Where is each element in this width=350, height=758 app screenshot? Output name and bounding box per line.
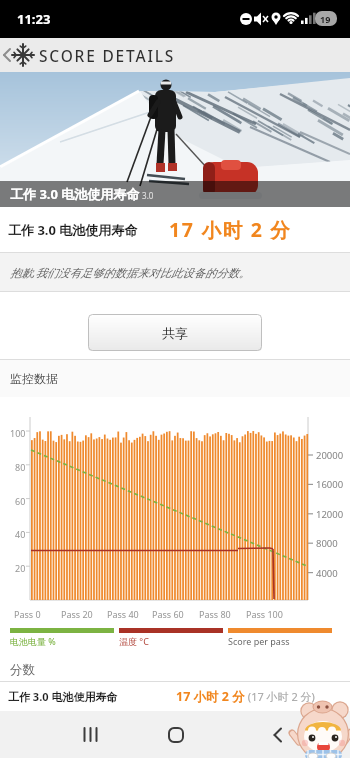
staticText: 温度 °C xyxy=(119,635,149,647)
staticText: 分数 xyxy=(10,662,35,678)
staticText: (17 小时 2 分) xyxy=(245,689,315,704)
staticText: 80 xyxy=(15,461,26,473)
staticText: 8000 xyxy=(316,537,338,550)
staticText: Pass 80 xyxy=(199,608,231,620)
staticText: 100 xyxy=(10,427,26,439)
staticText: 工作 3.0 电池使用寿命 xyxy=(8,221,138,239)
staticText: 40 xyxy=(15,528,26,540)
staticText: 工作 3.0 电池使用寿命 xyxy=(10,185,140,203)
button[interactable] xyxy=(66,711,114,758)
staticText: 20000 xyxy=(316,449,344,462)
staticText: SCORE DETAILS xyxy=(39,45,176,66)
button[interactable] xyxy=(254,711,302,758)
button[interactable] xyxy=(152,711,200,758)
staticText: 3.0 xyxy=(140,190,154,201)
button[interactable]: SCORE DETAILS xyxy=(0,38,350,72)
staticText: 16000 xyxy=(316,478,344,491)
staticText: 20 xyxy=(15,562,26,574)
staticText: 共享 xyxy=(162,325,188,341)
staticText: 4000 xyxy=(316,567,338,580)
staticText: 12000 xyxy=(316,508,344,521)
staticText: Pass 60 xyxy=(152,608,184,620)
staticText: 监控数据 xyxy=(10,371,58,386)
staticText: 19 xyxy=(320,13,331,25)
staticText: 抱歉,我们没有足够的数据来对比此设备的分数。 xyxy=(10,265,251,280)
button[interactable]: 共享 xyxy=(88,314,262,351)
staticText: Pass 20 xyxy=(61,608,93,620)
staticText: 工作 3.0 电池使用寿命 xyxy=(8,689,118,704)
staticText: 11:23 xyxy=(17,10,51,28)
staticText: Score per pass xyxy=(228,635,290,647)
staticText: 电池电量 % xyxy=(10,635,56,647)
staticText: 17 小时 2 分 xyxy=(169,216,292,243)
staticText: 60 xyxy=(15,495,26,507)
staticText: Pass 40 xyxy=(107,608,139,620)
staticText: Pass 100 xyxy=(246,608,283,620)
staticText: Pass 0 xyxy=(14,608,41,620)
staticText: 17 小时 2 分 xyxy=(176,688,245,705)
